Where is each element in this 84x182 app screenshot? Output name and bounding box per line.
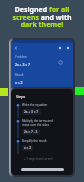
staticText: + 7 steps from Lorem! [24,157,53,161]
staticText: Designed for all screens and with dark t… [0,5,84,29]
staticText: Steps [16,94,26,99]
button[interactable]: Info [58,60,63,65]
staticText: x = 2 [24,146,31,150]
staticText: Simplify the result [22,139,47,143]
button[interactable]: Bookmark [57,45,63,51]
staticText: 2x + 3 = 7 [24,110,39,114]
staticText: Result [15,73,24,77]
staticText: 2x + 3 = 7 [15,62,31,67]
button[interactable]: More options [65,45,71,51]
staticText: x = 2 [15,80,23,85]
staticText: Write the equation [22,103,48,107]
staticText: 2x = 7 - 3 [24,130,38,134]
staticText: Problem [15,55,27,59]
button[interactable]: Back [13,45,19,51]
staticText: Multiply the terms and move over the sid… [22,119,53,127]
